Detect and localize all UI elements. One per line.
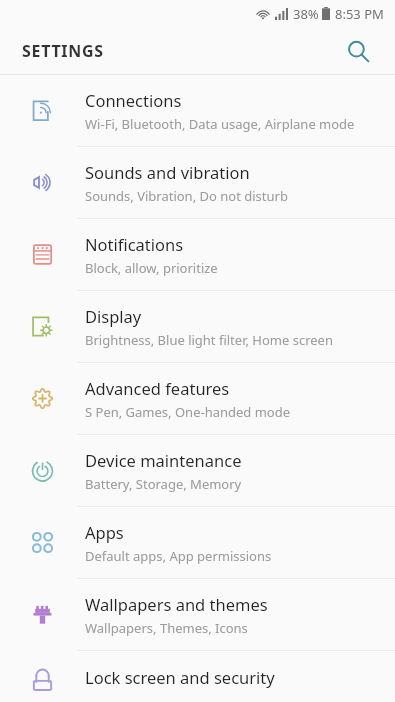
staticText: Device maintenance: [85, 449, 242, 471]
staticText: Lock screen and security: [85, 666, 275, 688]
staticText: Sounds and vibration: [85, 161, 250, 183]
staticText: Apps: [85, 521, 124, 543]
staticText: Wallpapers and themes: [85, 593, 268, 615]
button[interactable]: Notifications: [0, 219, 395, 290]
staticText: Sounds, Vibration, Do not disturb: [85, 187, 288, 205]
button[interactable]: Search: [340, 33, 376, 69]
staticText: Block, allow, prioritize: [85, 259, 218, 277]
button[interactable]: Device maintenance: [0, 435, 395, 506]
button[interactable]: Apps: [0, 507, 395, 578]
staticText: 38%: [293, 5, 319, 23]
button[interactable]: Connections: [0, 75, 395, 146]
button[interactable]: Wallpapers and themes: [0, 579, 395, 650]
button[interactable]: Advanced features: [0, 363, 395, 434]
staticText: Notifications: [85, 233, 184, 255]
staticText: Connections: [85, 89, 182, 111]
staticText: Default apps, App permissions: [85, 547, 272, 565]
staticText: Brightness, Blue light filter, Home scre…: [85, 331, 333, 349]
staticText: Wi-Fi, Bluetooth, Data usage, Airplane m…: [85, 115, 355, 133]
staticText: Wallpapers, Themes, Icons: [85, 619, 248, 637]
staticText: Display: [85, 305, 142, 327]
staticText: 8:53 PM: [335, 5, 384, 23]
button[interactable]: Lock screen and security: [0, 651, 395, 702]
button[interactable]: Display: [0, 291, 395, 362]
staticText: S Pen, Games, One-handed mode: [85, 403, 291, 421]
button[interactable]: Sounds and vibration: [0, 147, 395, 218]
staticText: SETTINGS: [22, 40, 104, 62]
staticText: Advanced features: [85, 377, 230, 399]
staticText: Battery, Storage, Memory: [85, 475, 242, 493]
